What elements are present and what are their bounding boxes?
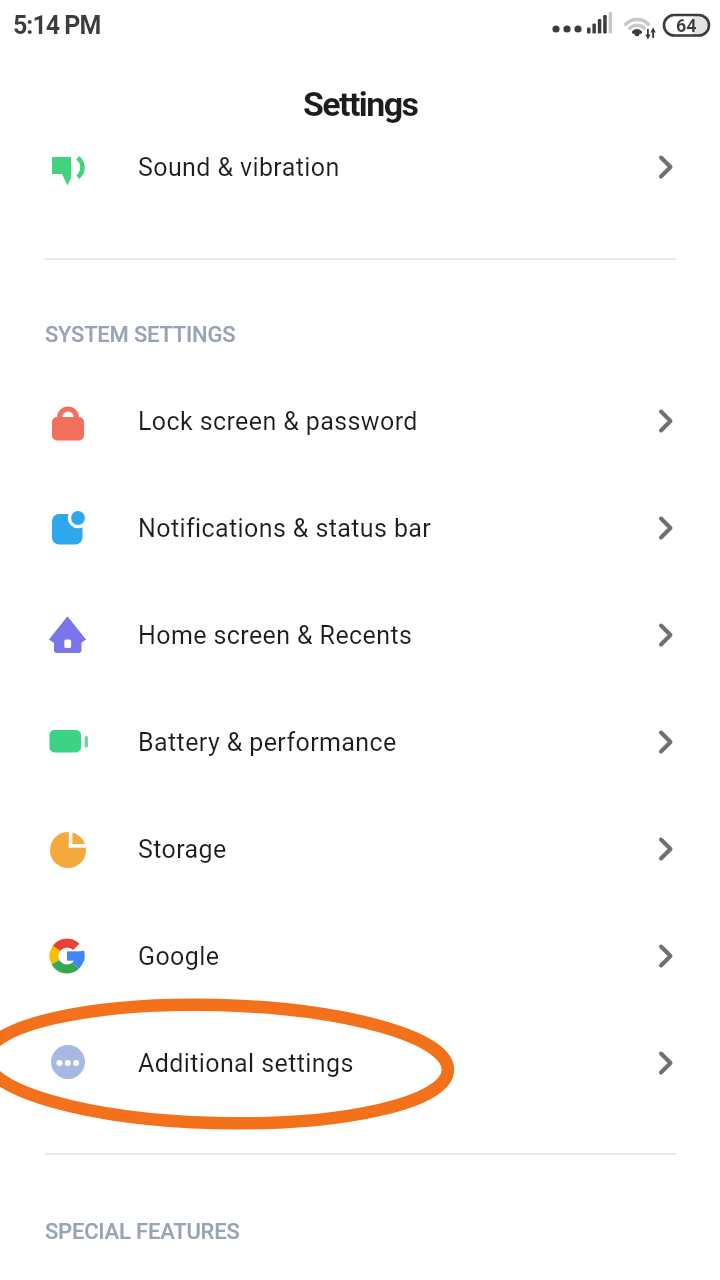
staticText: SYSTEM SETTINGS — [45, 322, 236, 348]
staticText: SPECIAL FEATURES — [45, 1219, 240, 1245]
staticText: Home screen & Recents — [138, 621, 413, 650]
staticText: 64 — [676, 15, 697, 36]
staticText: Storage — [138, 835, 227, 864]
staticText: Google — [138, 942, 220, 971]
staticText: Sound & vibration — [138, 153, 340, 182]
staticText: Notifications & status bar — [138, 514, 432, 543]
staticText: Lock screen & password — [138, 407, 418, 436]
staticText: Battery & performance — [138, 728, 397, 757]
staticText: Settings — [303, 84, 418, 124]
staticText: 5:14 PM — [13, 11, 101, 40]
staticText: Additional settings — [138, 1049, 354, 1078]
